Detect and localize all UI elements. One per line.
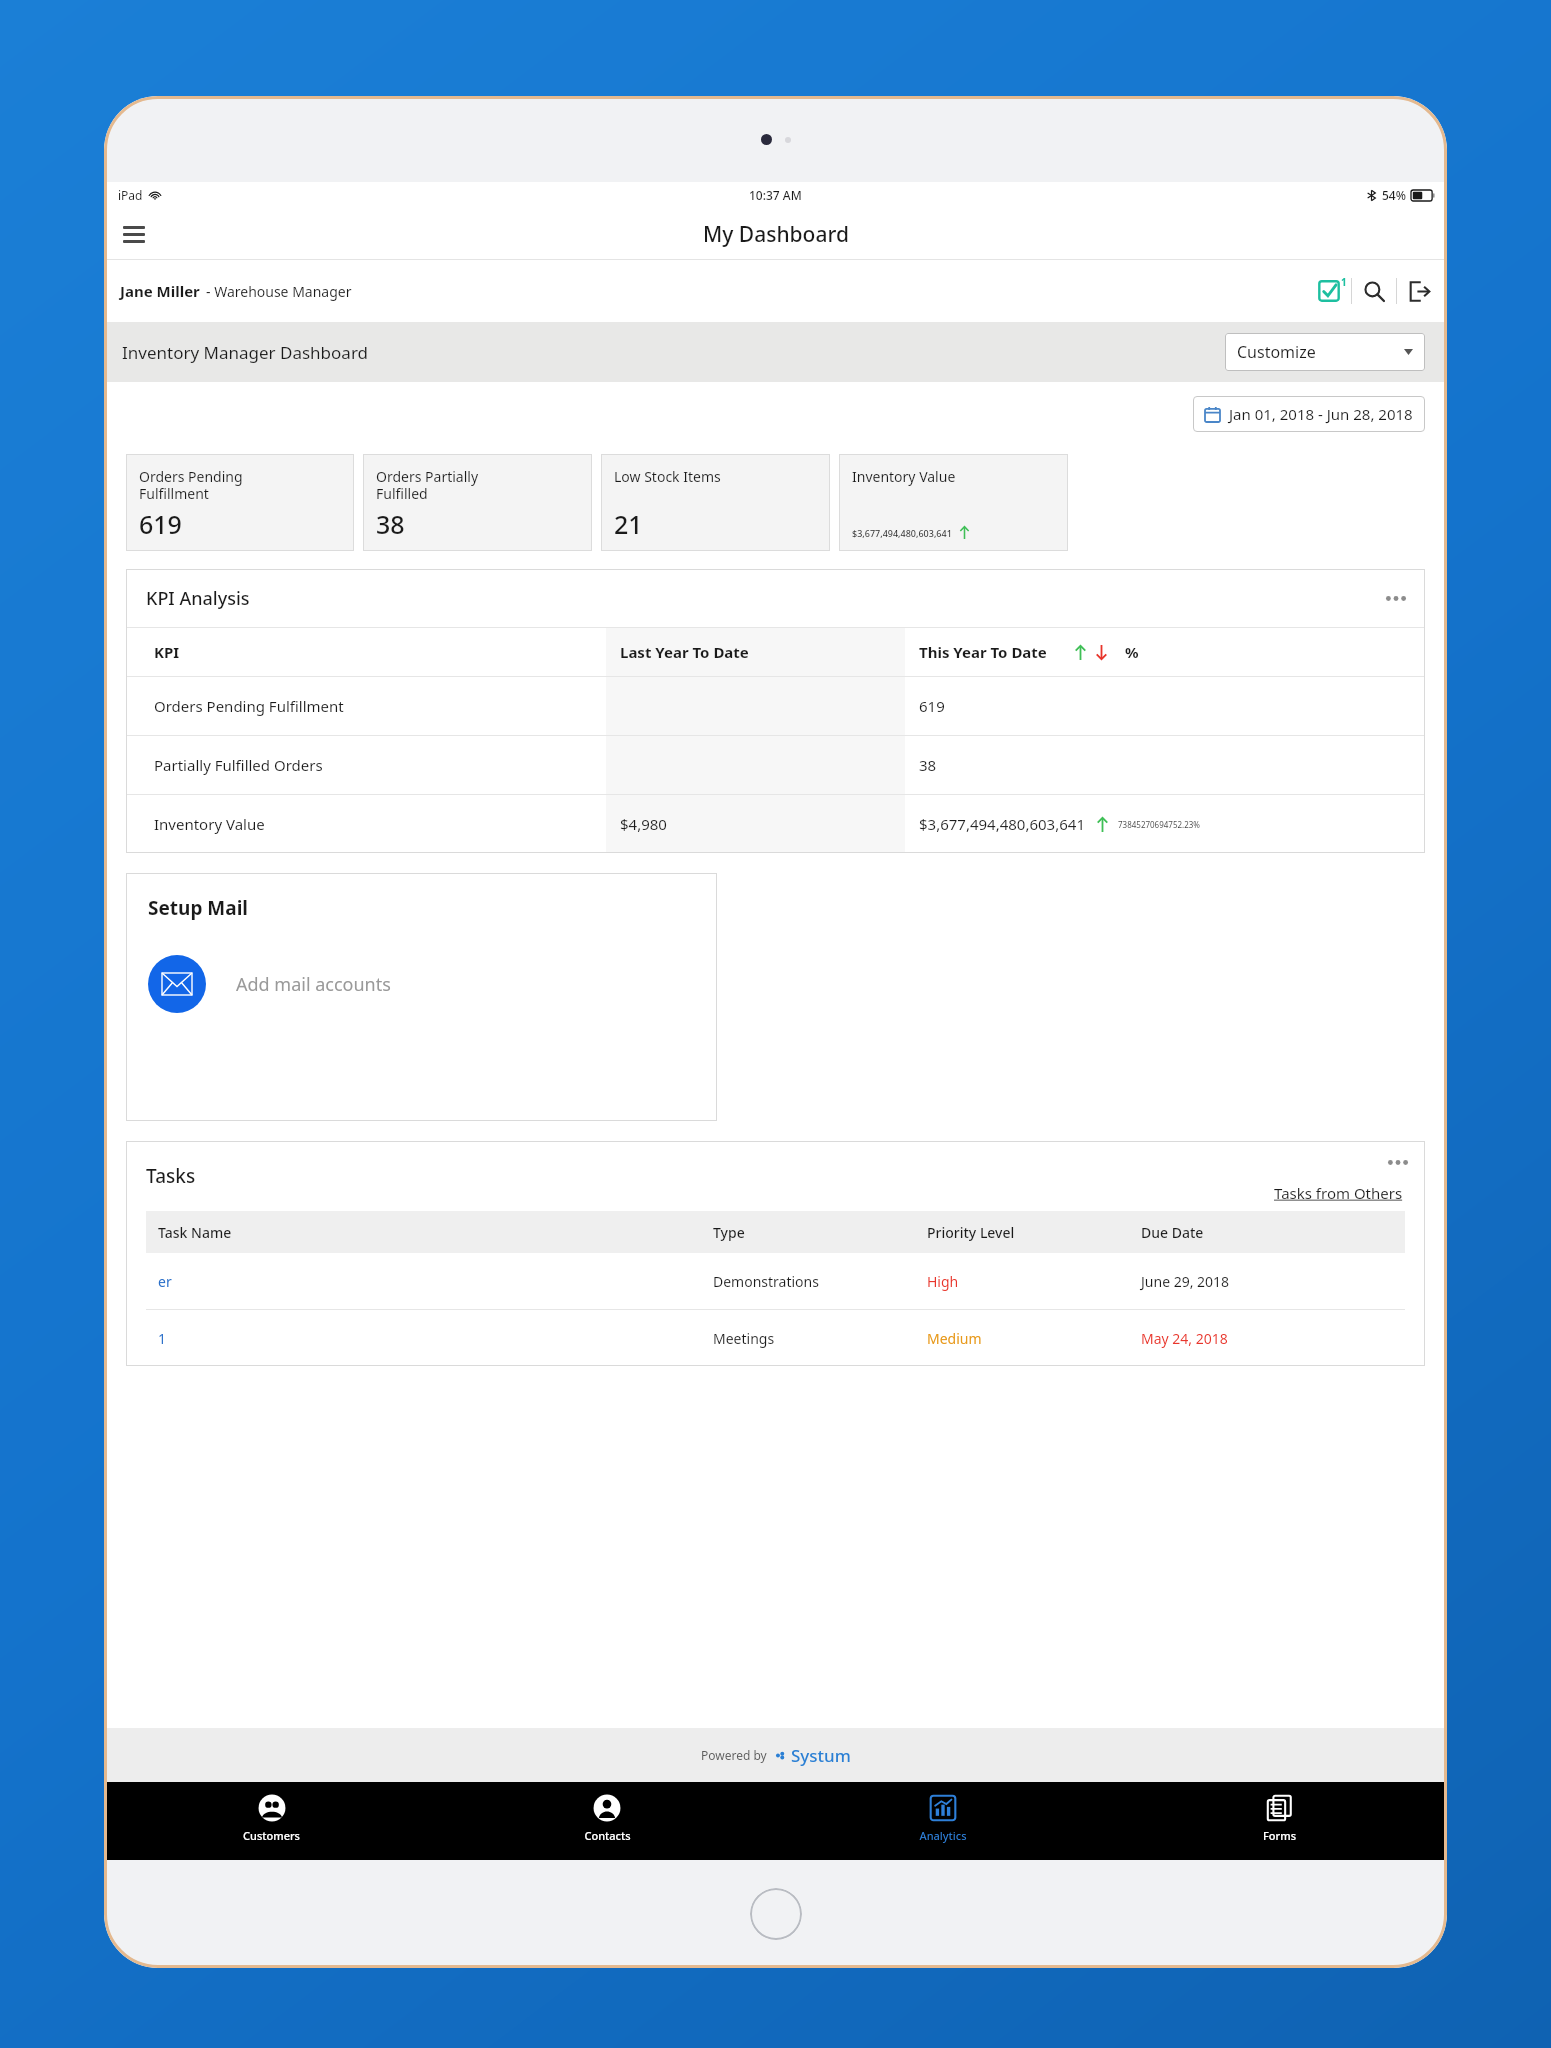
staticText: Type <box>713 1223 927 1242</box>
button[interactable]: Partially Fulfilled Orders <box>126 736 1425 794</box>
staticText: Customize <box>1237 341 1316 363</box>
staticText: Setup Mail <box>148 895 248 921</box>
staticText: Forms <box>1263 1828 1296 1843</box>
staticText: Systum <box>791 1744 851 1767</box>
button[interactable]: Tasks from Others <box>1274 1183 1403 1203</box>
staticText: Tasks <box>146 1163 196 1189</box>
staticText: - Warehouse Manager <box>206 282 352 301</box>
staticText: Due Date <box>1141 1223 1405 1242</box>
staticText: High <box>927 1272 1141 1291</box>
staticText: $3,677,494,480,603,641 <box>852 527 952 539</box>
staticText: Orders Partially Fulfilled <box>376 467 479 503</box>
button[interactable]: Low Stock Items <box>601 454 830 551</box>
staticText: Inventory Manager Dashboard <box>122 341 369 364</box>
staticText: May 24, 2018 <box>1141 1329 1405 1348</box>
button[interactable]: 1 <box>126 1310 1425 1366</box>
staticText: Jan 01, 2018 - Jun 28, 2018 <box>1229 404 1413 424</box>
staticText: KPI Analysis <box>146 586 250 611</box>
staticText: 73845270694752.23% <box>1118 819 1201 830</box>
staticText: 38 <box>376 507 405 541</box>
staticText: iPad <box>118 187 143 203</box>
button[interactable]: Customize <box>1225 333 1425 371</box>
staticText: 1 <box>158 1329 713 1348</box>
button[interactable]: Orders Partially Fulfilled <box>363 454 592 551</box>
staticText: 619 <box>919 696 945 716</box>
button[interactable]: Inventory Value <box>126 795 1425 853</box>
staticText: 21 <box>614 507 643 541</box>
staticText: My Dashboard <box>703 220 849 249</box>
staticText: Low Stock Items <box>614 467 721 486</box>
button[interactable]: Menu <box>112 212 156 256</box>
staticText: Medium <box>927 1329 1141 1348</box>
staticText: Orders Pending Fulfillment <box>139 467 243 503</box>
button[interactable]: Log out <box>1397 269 1441 313</box>
staticText: 54% <box>1382 187 1406 203</box>
staticText: Powered by <box>701 1747 767 1763</box>
staticText: Analytics <box>919 1828 967 1843</box>
button[interactable]: Inventory Value <box>839 454 1068 551</box>
staticText: June 29, 2018 <box>1141 1272 1405 1291</box>
staticText: Contacts <box>584 1828 631 1843</box>
staticText: $4,980 <box>620 814 667 834</box>
staticText: Inventory Value <box>852 467 956 486</box>
button[interactable]: Forms <box>1111 1782 1447 1860</box>
button[interactable]: More options <box>1383 1147 1413 1177</box>
staticText: $3,677,494,480,603,641 <box>919 814 1085 834</box>
staticText: Priority Level <box>927 1223 1141 1242</box>
staticText: Customers <box>243 1828 300 1843</box>
staticText: Partially Fulfilled Orders <box>154 755 323 775</box>
staticText: Jane Miller <box>120 281 200 301</box>
staticText: KPI <box>154 642 180 662</box>
staticText: Task Name <box>158 1223 713 1242</box>
button[interactable]: Orders Pending Fulfillment <box>126 454 354 551</box>
staticText: 619 <box>139 507 182 541</box>
button[interactable]: Analytics <box>775 1782 1111 1860</box>
button[interactable]: More options <box>1379 581 1413 615</box>
staticText: This Year To Date <box>919 642 1047 662</box>
staticText: Last Year To Date <box>620 642 749 662</box>
staticText: Demonstrations <box>713 1272 927 1291</box>
button[interactable]: Add mail accounts <box>148 955 391 1013</box>
staticText: Add mail accounts <box>236 972 391 997</box>
staticText: Meetings <box>713 1329 927 1348</box>
staticText: er <box>158 1272 713 1291</box>
button[interactable]: Jan 01, 2018 - Jun 28, 2018 <box>1193 396 1425 432</box>
button[interactable]: Contacts <box>439 1782 775 1860</box>
staticText: 10:37 AM <box>749 187 802 203</box>
button[interactable]: Orders Pending Fulfillment <box>126 677 1425 735</box>
button[interactable]: Search <box>1352 269 1396 313</box>
staticText: % <box>1125 642 1139 662</box>
staticText: 38 <box>919 755 937 775</box>
button[interactable]: Tasks <box>1307 269 1351 313</box>
staticText: Inventory Value <box>154 814 265 834</box>
button[interactable]: er <box>126 1253 1425 1309</box>
staticText: Orders Pending Fulfillment <box>154 696 344 716</box>
staticText: 1 <box>1341 275 1347 289</box>
button[interactable]: Customers <box>104 1782 439 1860</box>
